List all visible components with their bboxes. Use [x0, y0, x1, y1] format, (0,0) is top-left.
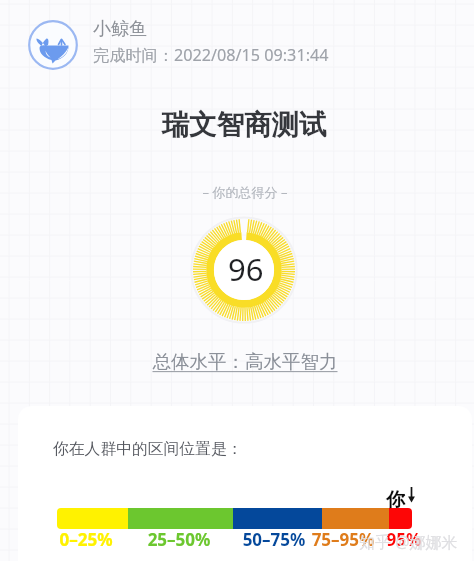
staticText: 小鲸鱼 [93, 18, 147, 41]
staticText: 你在人群中的区间位置是： [53, 439, 243, 459]
button[interactable]: 头像 [28, 18, 329, 68]
staticText: 瑞文智商测试 [7, 108, 474, 143]
other: 头像 [28, 20, 78, 70]
staticText: 25–50% [139, 528, 219, 551]
staticText: 你 [386, 488, 405, 512]
staticText: 96 [228, 248, 264, 290]
staticText: 95% [364, 528, 444, 551]
staticText: – 你的总得分 – [8, 183, 474, 201]
staticText: 知乎 @娜娜米 [359, 531, 458, 553]
staticText: 0–25% [46, 528, 126, 551]
staticText: 50–75% [234, 528, 314, 551]
staticText: 75–95% [303, 528, 383, 551]
staticText: 完成时间：2022/08/15 09:31:44 [93, 44, 329, 66]
staticText: 总体水平：高水平智力 [8, 350, 474, 373]
